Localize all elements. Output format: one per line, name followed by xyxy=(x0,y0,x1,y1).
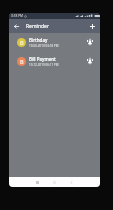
staticText: Birthday xyxy=(29,37,48,43)
button[interactable]: Add reminder xyxy=(85,19,99,33)
staticText: 19-03-2019 03:18 PM xyxy=(29,44,59,48)
button[interactable]: Alarm xyxy=(83,56,95,68)
staticText: B xyxy=(20,58,24,65)
staticText: 3:18 PM xyxy=(11,14,23,18)
button[interactable]: Back xyxy=(9,19,23,33)
button[interactable]: Home xyxy=(46,177,63,187)
button[interactable]: B xyxy=(9,52,100,71)
button[interactable]: Recents xyxy=(29,177,46,187)
button[interactable]: Alarm xyxy=(83,37,95,49)
staticText: Reminder xyxy=(26,23,49,30)
button[interactable]: B xyxy=(9,33,100,52)
staticText: Bill Payment xyxy=(29,56,56,62)
staticText: 19-12-2019 06:11 PM xyxy=(29,63,59,67)
button[interactable]: Back xyxy=(63,177,80,187)
staticText: B xyxy=(20,39,24,46)
